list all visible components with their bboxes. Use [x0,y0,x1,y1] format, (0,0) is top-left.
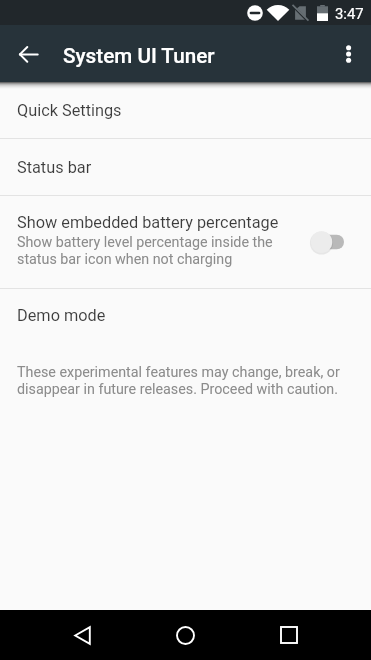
button[interactable]: Status bar [0,139,371,195]
staticText: Quick Settings [17,101,122,120]
button[interactable]: Show embedded battery percentage [0,196,371,288]
staticText: Show battery level percentage inside the… [17,234,300,267]
button[interactable]: Back [31,610,134,660]
staticText: These experimental features may change, … [17,364,349,397]
button[interactable]: Navigate up [6,32,50,76]
staticText: System UI Tuner [63,44,215,68]
button[interactable]: Quick Settings [0,82,371,138]
button[interactable]: Show embedded battery percentage [308,224,350,260]
button[interactable]: More options [327,32,371,76]
staticText: Demo mode [17,306,106,325]
staticText: Status bar [17,158,92,177]
button[interactable]: Demo mode [0,289,371,347]
staticText: 3:47 [335,5,364,22]
button[interactable]: Recent apps [237,610,340,660]
staticText: Show embedded battery percentage [17,213,279,232]
button[interactable]: Home [134,610,237,660]
